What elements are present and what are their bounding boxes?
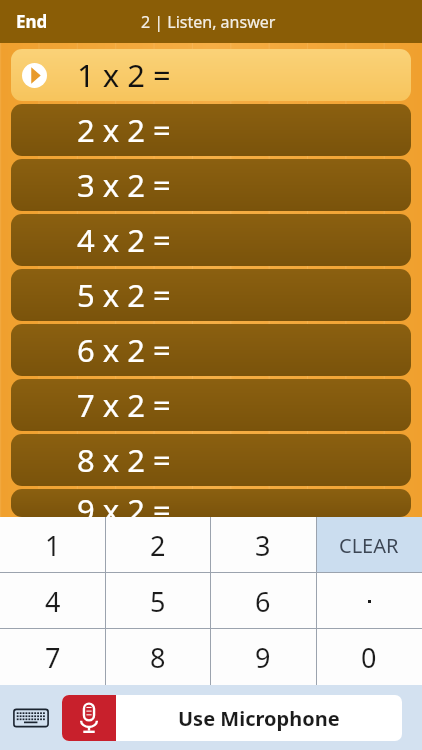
staticText: 9 [255, 639, 271, 676]
staticText: 0 [361, 639, 377, 676]
button[interactable]: 0 [316, 629, 422, 685]
staticText: 8 [150, 639, 166, 676]
staticText: 1 x 2 = [77, 54, 171, 96]
staticText: 5 [150, 583, 166, 620]
button[interactable]: 3 x 2 = [11, 159, 411, 211]
button[interactable]: 7 x 2 = [11, 379, 411, 431]
staticText: 2 | Listen, answer [141, 11, 276, 33]
button[interactable] [316, 573, 422, 629]
staticText: 7 x 2 = [77, 384, 171, 426]
staticText: 3 [255, 527, 271, 564]
button[interactable]: Keyboard [9, 696, 53, 740]
button[interactable]: 9 x 2 = [11, 489, 411, 517]
staticText: 6 [255, 583, 271, 620]
button[interactable]: 1 x 2 = [11, 49, 411, 101]
button[interactable]: 2 x 2 = [11, 104, 411, 156]
staticText: 7 [45, 639, 61, 676]
staticText: 4 x 2 = [77, 219, 171, 261]
button[interactable]: 7 [0, 629, 105, 685]
staticText: 2 [150, 527, 166, 564]
button[interactable]: 5 [105, 573, 210, 629]
staticText: Use Microphone [178, 705, 340, 732]
staticText: 9 x 2 = [77, 489, 171, 517]
button[interactable]: End [0, 2, 64, 41]
staticText: End [16, 10, 48, 33]
button[interactable]: 1 [0, 517, 105, 573]
staticText: 6 x 2 = [77, 329, 171, 371]
button[interactable]: 4 x 2 = [11, 214, 411, 266]
button[interactable]: Use Microphone [62, 695, 402, 741]
staticText: CLEAR [339, 532, 399, 559]
staticText: 2 x 2 = [77, 109, 171, 151]
staticText: 5 x 2 = [77, 274, 171, 316]
button[interactable]: 6 [210, 573, 316, 629]
button[interactable]: CLEAR [316, 517, 422, 573]
button[interactable]: 3 [210, 517, 316, 573]
staticText: 3 x 2 = [77, 164, 171, 206]
button[interactable]: 8 x 2 = [11, 434, 411, 486]
button[interactable]: 2 [105, 517, 210, 573]
button[interactable]: 6 x 2 = [11, 324, 411, 376]
staticText: 4 [45, 583, 61, 620]
button[interactable]: 4 [0, 573, 105, 629]
button[interactable]: 8 [105, 629, 210, 685]
button[interactable]: 9 [210, 629, 316, 685]
button[interactable]: 5 x 2 = [11, 269, 411, 321]
staticText: 8 x 2 = [77, 439, 171, 481]
staticText: 1 [45, 527, 61, 564]
